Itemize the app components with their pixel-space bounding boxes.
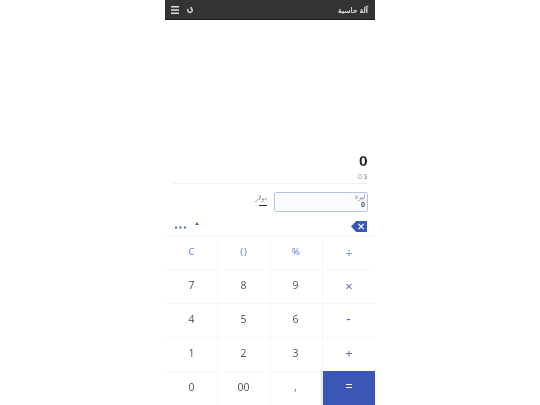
button[interactable]: 00 bbox=[217, 371, 269, 405]
staticText: + bbox=[345, 344, 353, 362]
staticText: 3 bbox=[292, 346, 299, 360]
button[interactable]: Expand bbox=[190, 217, 204, 229]
staticText: ÷ bbox=[345, 245, 353, 262]
staticText: 2 bbox=[240, 346, 247, 360]
staticText: C bbox=[188, 245, 195, 258]
button[interactable]: = bbox=[322, 371, 375, 405]
button[interactable]: % bbox=[269, 236, 322, 269]
staticText: 5 bbox=[240, 312, 247, 326]
staticText: 0 bbox=[188, 380, 195, 394]
staticText: آلة حاسبة bbox=[338, 5, 368, 15]
staticText: 1 bbox=[188, 346, 195, 360]
staticText: - bbox=[346, 309, 351, 328]
staticText: % bbox=[292, 245, 300, 258]
button[interactable]: 5 bbox=[217, 303, 269, 337]
button[interactable]: 4 bbox=[165, 303, 217, 337]
staticText: 7 bbox=[188, 278, 195, 292]
staticText: 4 bbox=[188, 312, 195, 326]
button[interactable]: 9 bbox=[269, 269, 322, 303]
button[interactable]: 0 bbox=[165, 371, 217, 405]
staticText: 00 bbox=[237, 380, 250, 394]
staticText: 8 bbox=[240, 278, 247, 292]
staticText: 6 bbox=[292, 312, 299, 326]
button[interactable]: Menu bbox=[169, 2, 180, 18]
button[interactable]: Backspace bbox=[348, 219, 369, 233]
staticText: ليرة bbox=[355, 193, 366, 200]
staticText: 9 bbox=[292, 278, 299, 292]
staticText: 0 bbox=[359, 150, 368, 170]
button[interactable]: 7 bbox=[165, 269, 217, 303]
staticText: 0 bbox=[361, 200, 366, 210]
button[interactable]: 8 bbox=[217, 269, 269, 303]
staticText: دولار bbox=[255, 194, 267, 201]
button[interactable]: + bbox=[322, 337, 375, 371]
button[interactable]: 1 bbox=[165, 337, 217, 371]
staticText: × bbox=[345, 277, 353, 295]
button[interactable]: × bbox=[322, 269, 375, 303]
button[interactable]: More options bbox=[171, 220, 189, 234]
button[interactable]: - bbox=[322, 303, 375, 337]
button[interactable]: 3 bbox=[269, 337, 322, 371]
button[interactable]: ( ) bbox=[217, 236, 269, 269]
button[interactable]: 2 bbox=[217, 337, 269, 371]
staticText: = bbox=[345, 377, 353, 395]
button[interactable]: ليرة bbox=[274, 192, 368, 212]
button[interactable]: , bbox=[269, 371, 322, 405]
button[interactable]: Refresh bbox=[184, 2, 195, 18]
button[interactable]: 6 bbox=[269, 303, 322, 337]
button[interactable]: C bbox=[165, 236, 217, 269]
staticText: ( ) bbox=[240, 245, 247, 258]
staticText: 0 $ bbox=[358, 172, 368, 182]
button[interactable]: ÷ bbox=[322, 236, 375, 269]
staticText: , bbox=[294, 380, 297, 394]
